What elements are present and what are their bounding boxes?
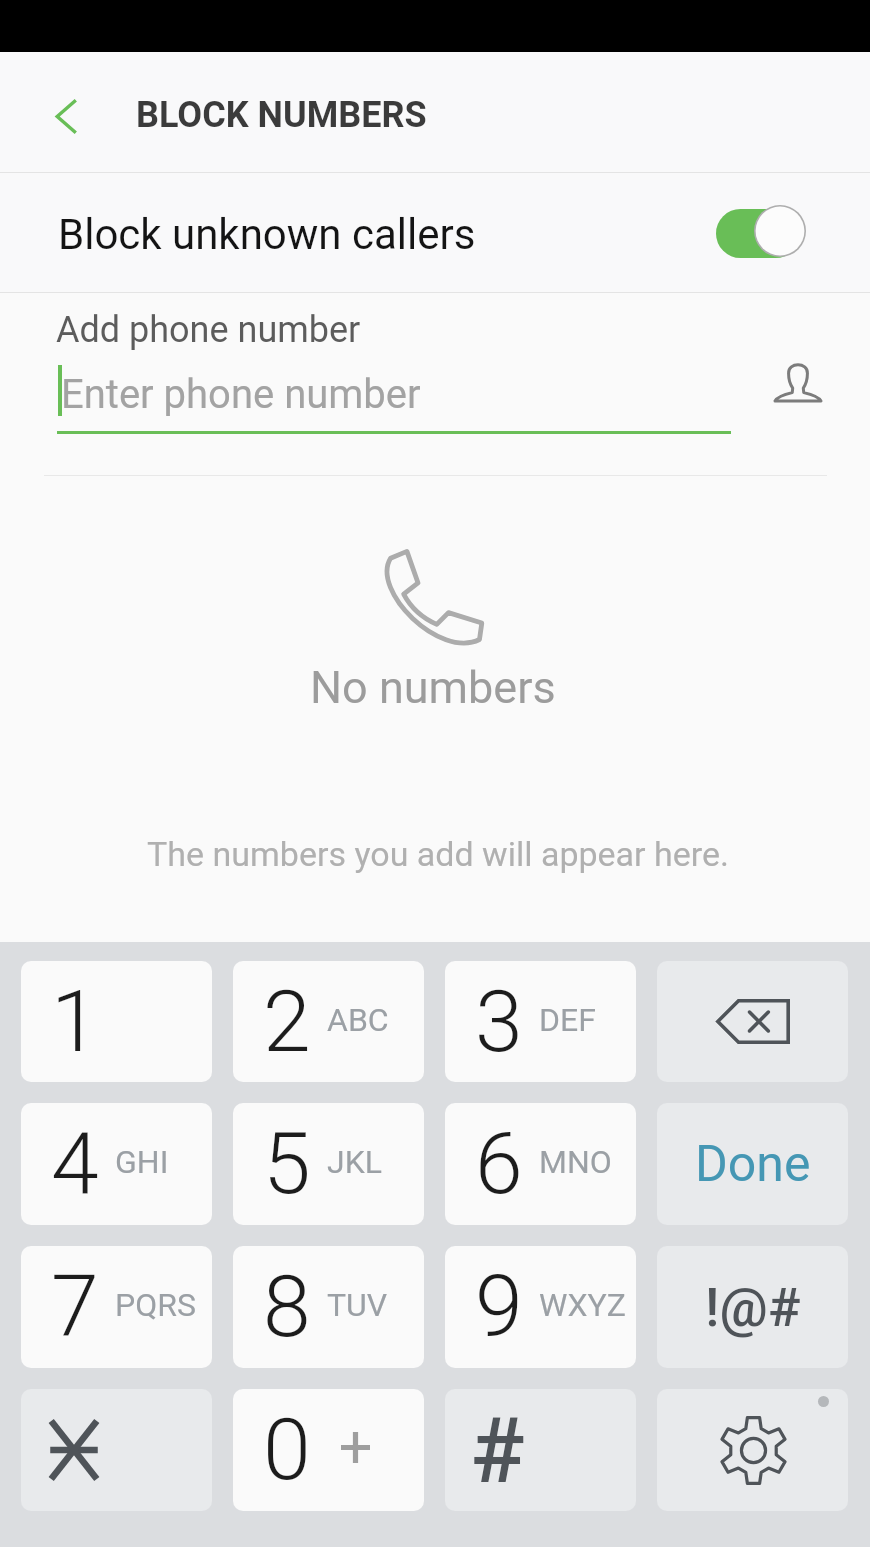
button[interactable]: Delete — [657, 961, 848, 1082]
button[interactable]: Done — [657, 1103, 848, 1225]
button[interactable]: Star — [21, 1389, 212, 1511]
button[interactable]: 8 — [233, 1246, 424, 1368]
staticText: # — [470, 1399, 525, 1504]
staticText: 3 — [475, 971, 523, 1072]
button[interactable]: 3 — [445, 961, 636, 1082]
staticText: BLOCK NUMBERS — [136, 94, 427, 136]
staticText: DEF — [539, 1001, 596, 1039]
staticText: !@# — [705, 1276, 801, 1339]
staticText: Done — [695, 1135, 811, 1194]
button[interactable]: 7 — [21, 1246, 212, 1368]
button[interactable]: Block unknown callers — [0, 173, 870, 292]
staticText: TUV — [327, 1286, 388, 1324]
button[interactable]: Symbols — [657, 1246, 848, 1368]
staticText: 1 — [51, 971, 99, 1072]
button[interactable]: 4 — [21, 1103, 212, 1225]
staticText: MNO — [539, 1143, 612, 1181]
staticText: PQRS — [115, 1286, 196, 1324]
staticText: Enter phone number — [61, 371, 421, 418]
button[interactable]: 5 — [233, 1103, 424, 1225]
button[interactable]: Select from contacts — [746, 338, 850, 422]
staticText: 8 — [263, 1256, 311, 1357]
staticText: WXYZ — [539, 1286, 626, 1324]
button[interactable]: 1 — [21, 961, 212, 1082]
staticText: Add phone number — [56, 309, 361, 351]
button[interactable]: # — [445, 1389, 636, 1511]
staticText: JKL — [327, 1143, 382, 1181]
button[interactable]: Block unknown callers toggle — [714, 203, 810, 259]
staticText: 9 — [475, 1256, 523, 1357]
staticText: 6 — [475, 1113, 523, 1214]
button[interactable]: 9 — [445, 1246, 636, 1368]
button[interactable]: 6 — [445, 1103, 636, 1225]
staticText: The numbers you add will appear here. — [147, 834, 730, 874]
button[interactable]: Keypad settings — [657, 1389, 848, 1511]
staticText: 7 — [51, 1256, 99, 1357]
staticText: GHI — [115, 1143, 169, 1181]
button[interactable]: 2 — [233, 961, 424, 1082]
staticText: No numbers — [310, 661, 556, 714]
button[interactable]: Navigate up — [0, 52, 118, 172]
staticText: 0 — [263, 1399, 311, 1500]
staticText: 5 — [263, 1113, 311, 1214]
staticText: Block unknown callers — [58, 210, 476, 259]
staticText: 2 — [263, 971, 311, 1072]
button[interactable]: 0 — [233, 1389, 424, 1511]
staticText: 4 — [51, 1113, 99, 1214]
staticText: ABC — [327, 1001, 389, 1039]
